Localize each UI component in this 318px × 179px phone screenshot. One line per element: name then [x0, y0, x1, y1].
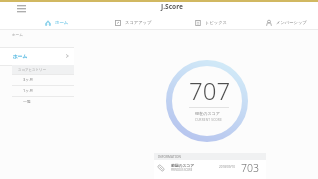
button[interactable]: メンバーシップ [266, 16, 307, 29]
staticText: INFORMATION [158, 155, 182, 159]
button[interactable]: 1ヶ月 [12, 85, 74, 96]
staticText: ホーム [55, 20, 69, 25]
staticText: 現在のスコア [195, 111, 220, 116]
staticText: スコアヒストリー [18, 68, 47, 72]
staticText: PREVIOUS SCORE [171, 168, 193, 172]
button[interactable]: スコアアップ [115, 16, 152, 29]
staticText: 1ヶ月 [23, 88, 34, 93]
staticText: J.Score [161, 2, 183, 11]
button[interactable]: Menu [14, 1, 29, 15]
button[interactable]: 前回のスコア [154, 160, 266, 179]
staticText: トピックス [205, 20, 227, 25]
button[interactable]: ホーム [0, 48, 74, 64]
staticText: ホーム [13, 53, 28, 59]
button[interactable]: 一覧 [12, 96, 74, 107]
staticText: 一覧 [23, 99, 31, 104]
staticText: スコアアップ [125, 20, 152, 25]
staticText: 3ヶ月 [23, 77, 34, 82]
staticText: 前回のスコア [171, 163, 195, 168]
staticText: 2018/09/10 [219, 165, 235, 169]
button[interactable]: 3ヶ月 [12, 74, 74, 85]
staticText: ホーム [12, 33, 23, 38]
staticText: メンバーシップ [276, 20, 307, 25]
staticText: 707 [189, 74, 231, 107]
button[interactable]: トピックス [195, 16, 227, 29]
staticText: 703 [241, 161, 259, 175]
staticText: CURRENT SCORE [195, 118, 222, 122]
button[interactable]: ホーム [45, 16, 69, 29]
